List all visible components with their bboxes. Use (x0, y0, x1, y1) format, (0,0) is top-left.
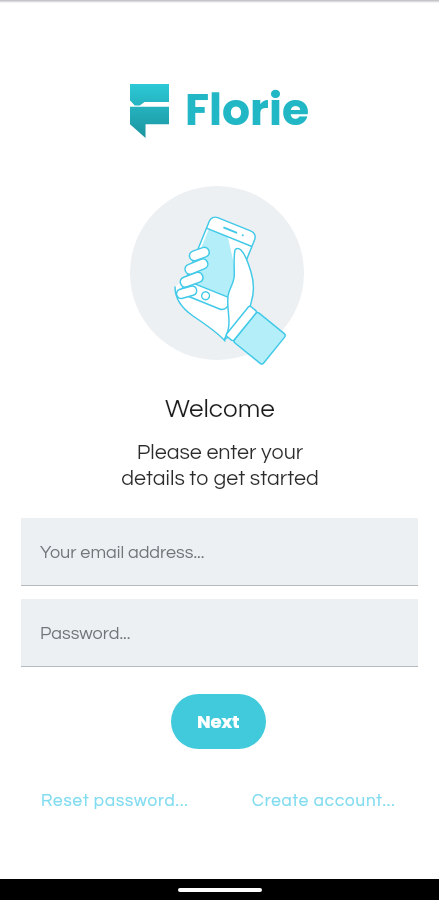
button[interactable]: Your email address... (21, 518, 418, 586)
staticText: Welcome (165, 396, 275, 423)
staticText: Password... (40, 624, 131, 643)
staticText: Florie (185, 79, 309, 141)
staticText: Please enter your details to get started (121, 441, 319, 490)
button[interactable]: Create account... (252, 792, 396, 810)
staticText: Reset password... (41, 792, 189, 810)
staticText: Next (197, 709, 240, 734)
other: Florie logo (130, 84, 169, 138)
staticText: Create account... (252, 792, 396, 810)
staticText: Your email address... (40, 543, 205, 562)
button[interactable]: Reset password... (41, 792, 189, 810)
button[interactable]: Next (171, 694, 266, 749)
button[interactable]: Password... (21, 599, 418, 667)
